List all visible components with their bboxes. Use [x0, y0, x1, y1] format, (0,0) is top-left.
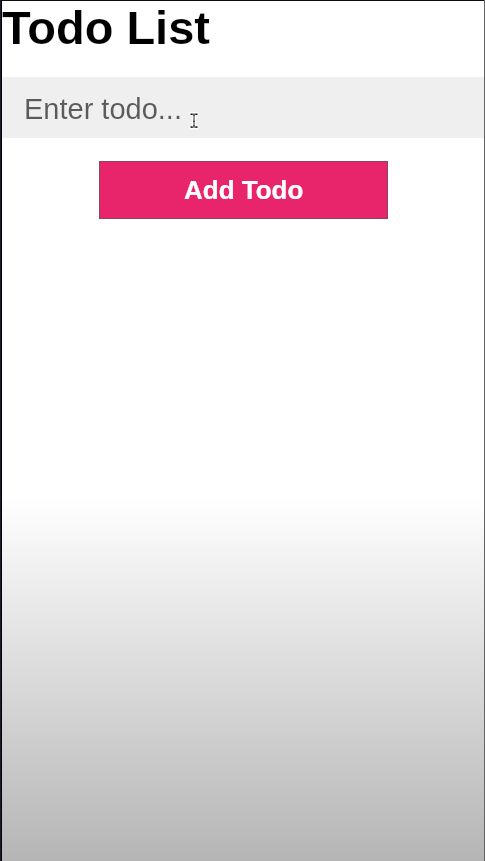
button[interactable]: Add Todo — [99, 161, 388, 219]
staticText: Add Todo — [184, 175, 304, 204]
staticText: Enter todo... — [24, 93, 182, 125]
button[interactable]: Enter todo text field — [0, 77, 485, 138]
staticText: Todo List — [2, 1, 210, 54]
